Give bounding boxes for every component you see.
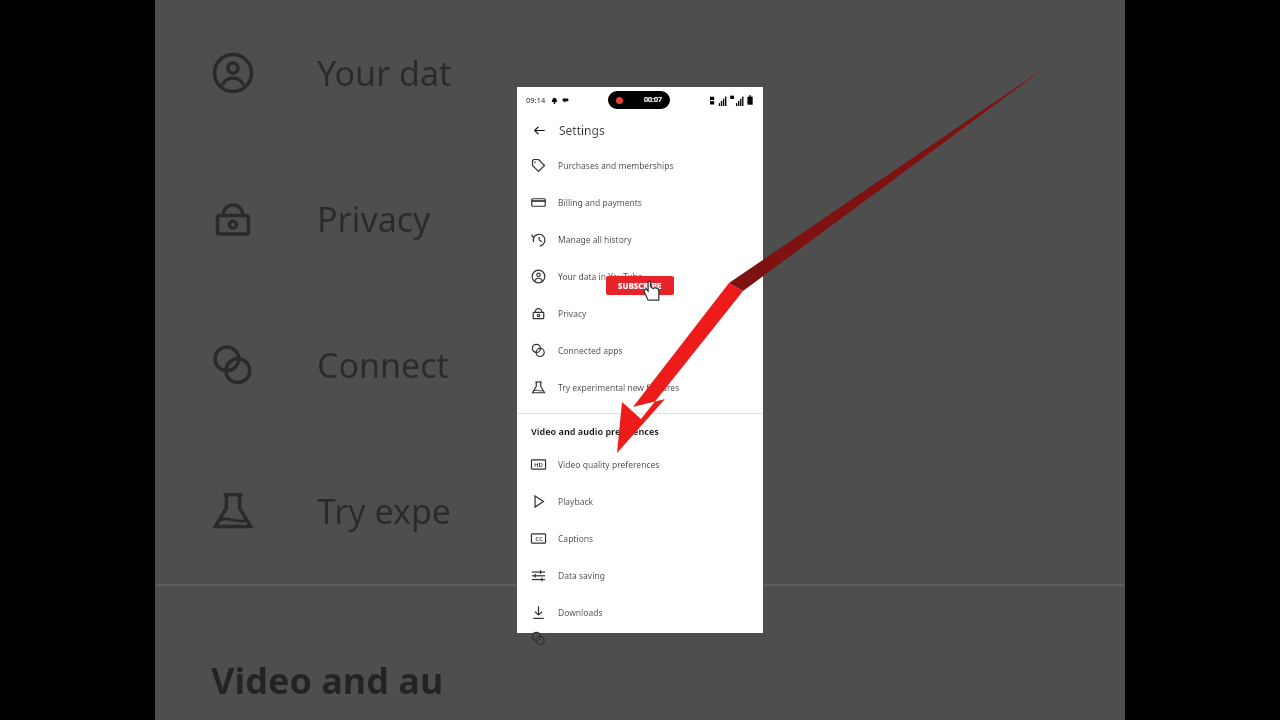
staticText: HD	[534, 461, 543, 469]
staticText: Billing and payments	[558, 197, 642, 209]
staticText: Privacy	[558, 308, 587, 320]
staticText: 00:07	[644, 95, 662, 105]
staticText: 09:14	[526, 95, 546, 105]
button[interactable]: Privacy	[517, 295, 763, 332]
staticText: Connected apps	[558, 345, 623, 357]
button[interactable]: Purchases and memberships	[517, 147, 763, 184]
staticText: Purchases and memberships	[558, 160, 674, 172]
button[interactable]: Manage all history	[517, 221, 763, 258]
other: Cursor	[643, 281, 660, 301]
staticText: Your dat	[317, 50, 452, 96]
staticText: Privacy	[317, 196, 431, 242]
staticText: Try expe	[317, 488, 451, 534]
button[interactable]: Live chat	[517, 631, 763, 633]
staticText: Video and au	[211, 656, 444, 705]
staticText: Try experimental new features	[558, 382, 680, 394]
staticText: Video quality preferences	[558, 459, 660, 471]
staticText: Captions	[558, 533, 594, 545]
staticText: Connect	[317, 342, 449, 388]
button[interactable]: Data saving	[517, 557, 763, 594]
button[interactable]: Playback	[517, 483, 763, 520]
button[interactable]: SUBSCRIBE	[606, 276, 674, 295]
staticText: Video and audio preferences	[531, 425, 659, 437]
button[interactable]: Your data in YouTube	[517, 258, 763, 295]
button[interactable]: Connected apps	[517, 332, 763, 369]
button[interactable]: Back	[528, 119, 550, 141]
button[interactable]: CC	[517, 520, 763, 557]
staticText: Downloads	[558, 607, 603, 619]
staticText: CC	[535, 535, 543, 543]
staticText: SUBSCRIBE	[618, 280, 662, 291]
button[interactable]: Downloads	[517, 594, 763, 631]
staticText: Manage all history	[558, 234, 632, 246]
staticText: Your data in YouTube	[558, 271, 643, 283]
staticText: Data saving	[558, 570, 605, 582]
button[interactable]: HD	[517, 446, 763, 483]
staticText: Playback	[558, 496, 594, 508]
button[interactable]: Try experimental new features	[517, 369, 763, 406]
button[interactable]: Billing and payments	[517, 184, 763, 221]
staticText: Settings	[559, 122, 605, 138]
